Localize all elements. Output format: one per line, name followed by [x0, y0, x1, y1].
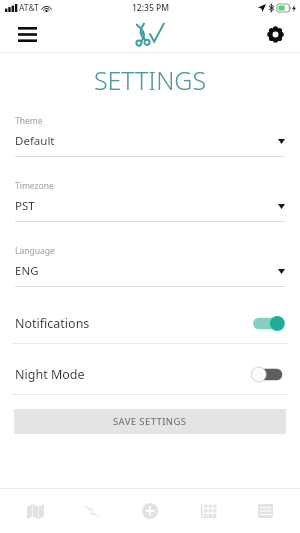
- staticText: ENG: [15, 263, 278, 279]
- button[interactable]: List: [242, 489, 288, 533]
- button[interactable]: Timezone: [0, 180, 300, 222]
- button[interactable]: Menu: [10, 17, 44, 51]
- button[interactable]: Night Mode: [0, 366, 300, 395]
- button[interactable]: App logo: [130, 18, 170, 50]
- staticText: Night Mode: [15, 366, 251, 383]
- staticText: 12:35 PM: [132, 2, 169, 14]
- staticText: Timezone: [15, 180, 54, 192]
- staticText: SAVE SETTINGS: [113, 415, 187, 428]
- staticText: PST: [15, 198, 278, 214]
- button[interactable]: Notifications: [0, 315, 300, 344]
- button[interactable]: Map: [12, 489, 58, 533]
- staticText: AT&T: [19, 2, 39, 14]
- button[interactable]: Language: [0, 245, 300, 287]
- button[interactable]: Settings: [259, 18, 291, 50]
- button[interactable]: Stats: [185, 489, 231, 533]
- staticText: Default: [15, 133, 278, 149]
- staticText: SETTINGS: [0, 63, 300, 97]
- staticText: Theme: [15, 115, 43, 127]
- button[interactable]: Theme: [0, 115, 300, 157]
- button[interactable]: Add: [127, 489, 173, 533]
- staticText: Language: [15, 245, 55, 257]
- staticText: Notifications: [15, 315, 251, 332]
- button[interactable]: SAVE SETTINGS: [14, 409, 286, 434]
